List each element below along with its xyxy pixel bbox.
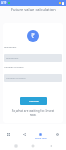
other: Rupee	[27, 30, 39, 42]
button[interactable]: Home	[31, 144, 35, 148]
button[interactable]: Share	[16, 124, 32, 136]
button[interactable]: Recents	[14, 144, 18, 148]
button[interactable]: Number of Month	[4, 74, 62, 82]
staticText: ₹	[31, 31, 36, 41]
button[interactable]: Investment	[4, 54, 62, 62]
button[interactable]: Future value	[32, 124, 49, 140]
staticText: Future value	[35, 137, 47, 140]
staticText: Future value calculation	[11, 7, 56, 12]
staticText: Calculate	[29, 100, 39, 103]
staticText: So,what are waiting for. Invest now.	[6, 109, 60, 117]
staticText: Investment	[6, 57, 19, 60]
button[interactable]: Settings	[49, 124, 66, 136]
staticText: 4:19	[1, 1, 7, 5]
staticText: Number of Month	[6, 77, 26, 80]
staticText: Number of Month	[4, 66, 24, 69]
staticText: Investment	[4, 46, 17, 49]
button[interactable]: Dashboard	[0, 124, 16, 136]
button[interactable]: Back	[49, 144, 53, 148]
button[interactable]: Calculate	[20, 97, 47, 105]
